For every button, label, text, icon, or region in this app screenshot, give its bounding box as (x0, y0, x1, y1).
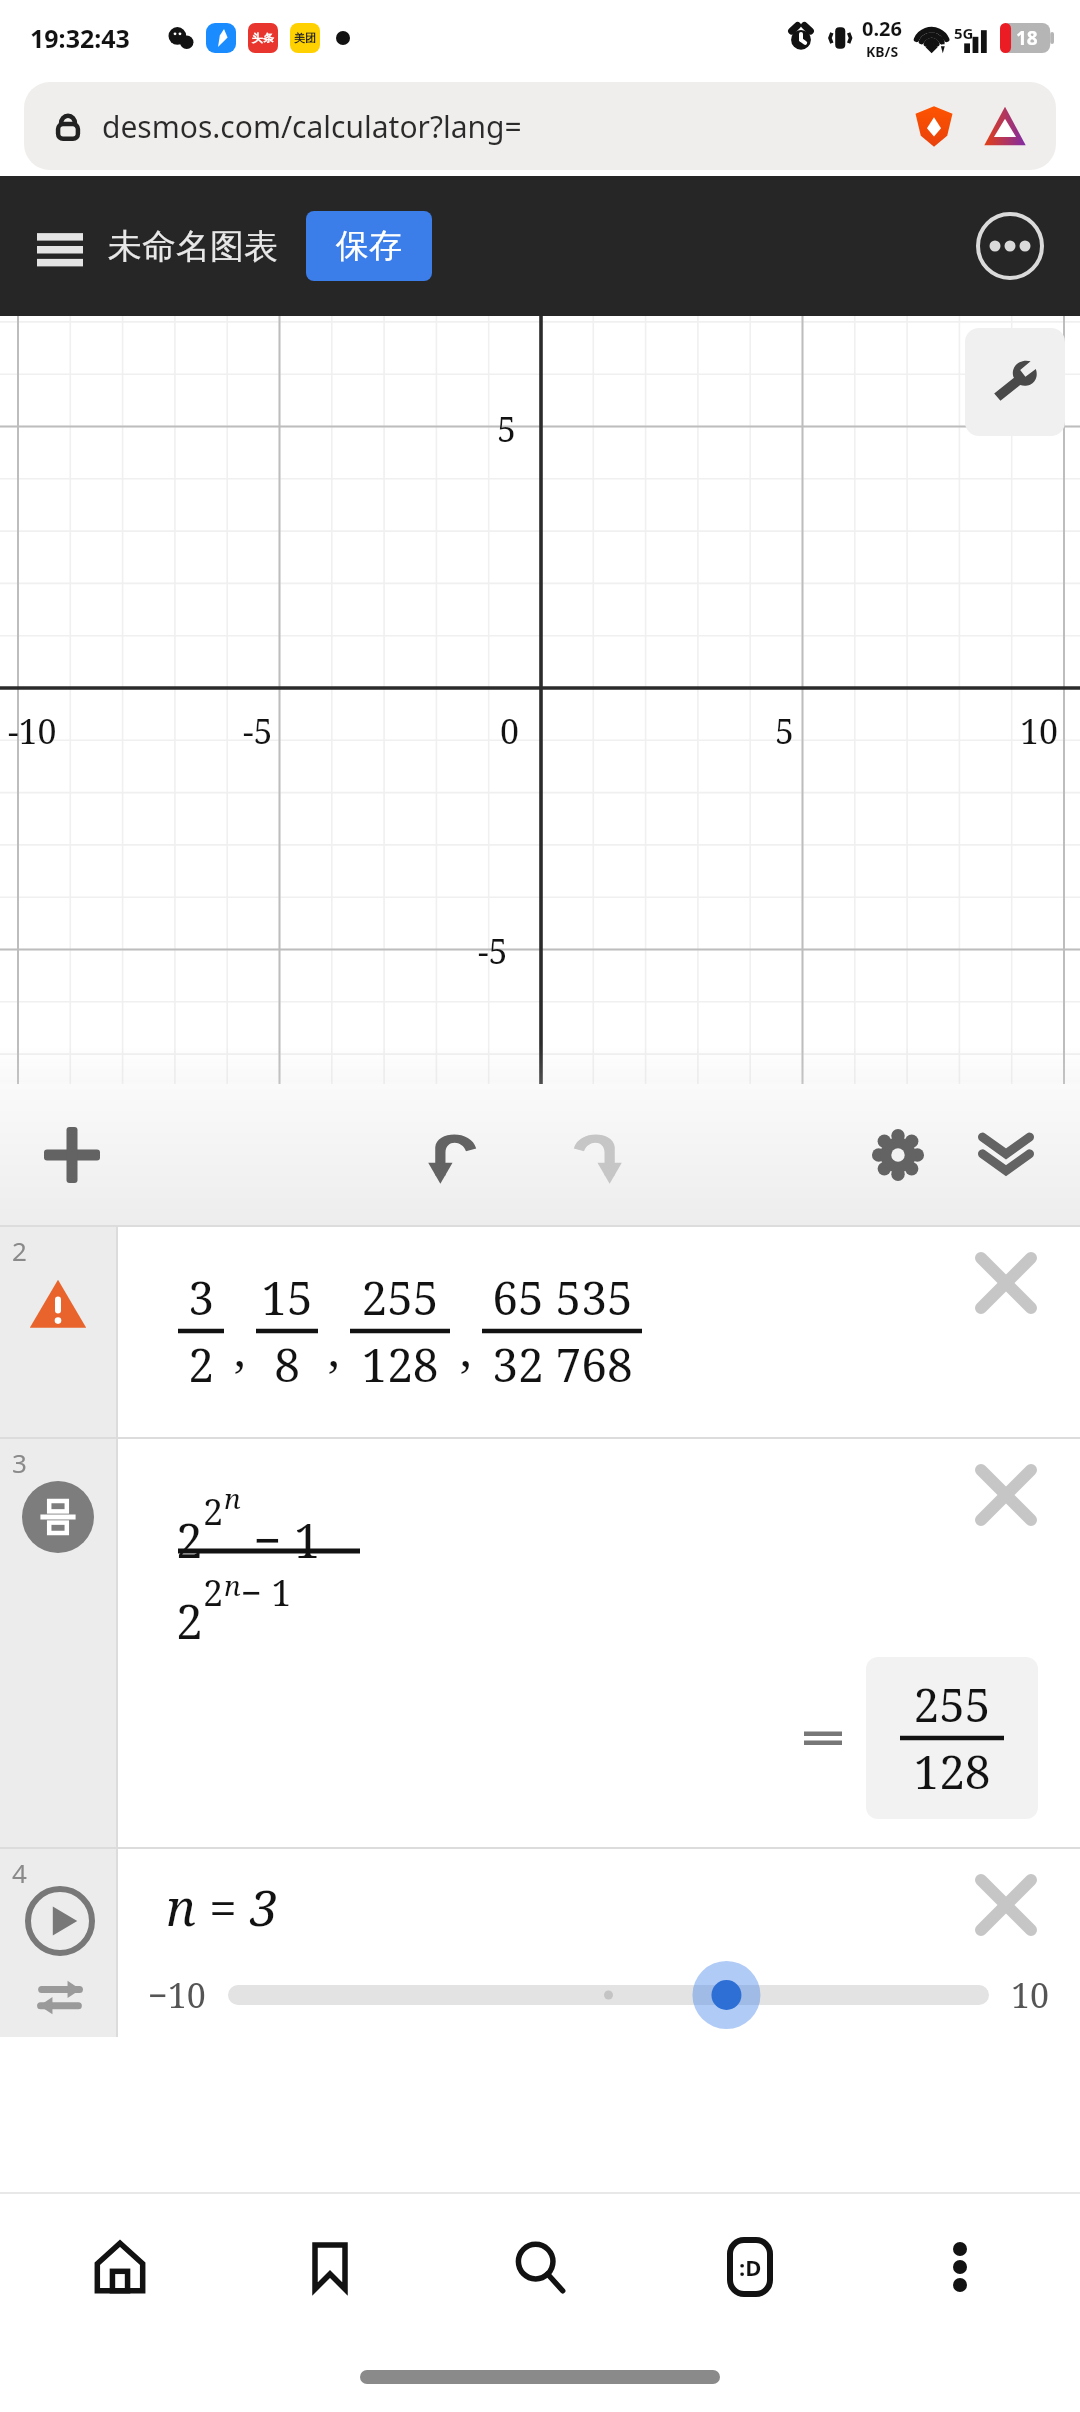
staticText: 18 (1016, 25, 1038, 51)
button[interactable]: Menu (22, 208, 98, 284)
staticText: , (234, 1318, 246, 1381)
staticText: 0 (500, 708, 520, 754)
staticText: − 1 (241, 1568, 292, 1617)
staticText: 32 768 (492, 1333, 633, 1396)
staticText: n (224, 1566, 241, 1604)
staticText: 2 (12, 1233, 27, 1268)
staticText: 2 (176, 1588, 203, 1653)
other: Brave Rewards (982, 103, 1028, 149)
staticText: 保存 (336, 225, 402, 267)
staticText: 255 (913, 1673, 991, 1736)
button[interactable]: Play animation (22, 1883, 98, 1959)
button[interactable]: 2 (0, 1225, 1080, 1437)
staticText: 4 (12, 1855, 27, 1890)
staticText: desmos.com/calculator?lang= (102, 106, 522, 147)
button[interactable]: Warning (26, 1273, 90, 1337)
staticText: 15 (261, 1266, 313, 1329)
staticText: 128 (361, 1333, 439, 1396)
button[interactable]: Delete expression (966, 1865, 1046, 1945)
staticText: n (224, 1479, 241, 1517)
button[interactable]: More options (968, 204, 1052, 288)
staticText: -5 (243, 708, 273, 754)
staticText: −10 (148, 1972, 206, 2018)
button[interactable]: Redo (543, 1105, 643, 1205)
button[interactable]: More (870, 2192, 1050, 2342)
staticText: 0.26 (862, 15, 902, 42)
button[interactable]: 4 (0, 1847, 1080, 2037)
staticText: 头条 (252, 31, 274, 45)
staticText: 10 (1011, 1972, 1050, 2018)
button[interactable]: Undo (407, 1105, 507, 1205)
staticText: 2 (203, 1568, 224, 1617)
staticText: 2 (203, 1487, 224, 1536)
button[interactable]: Graph settings (965, 328, 1065, 436)
staticText: 5 (497, 406, 517, 452)
staticText: 2 (176, 1507, 203, 1572)
button[interactable]: Search (450, 2192, 630, 2342)
button[interactable]: Collapse (956, 1105, 1056, 1205)
staticText: n = 3 (166, 1873, 278, 1941)
button[interactable]: 255 (866, 1657, 1038, 1819)
button[interactable]: Add expression (22, 1105, 122, 1205)
staticText: , (460, 1318, 472, 1381)
staticText: 19:32:43 (30, 21, 130, 55)
other: Brave shields (912, 104, 956, 148)
staticText: , (328, 1318, 340, 1381)
button[interactable]: desmos.com/calculator?lang= (24, 82, 1056, 170)
staticText: 美团 (294, 31, 316, 45)
button[interactable]: Fraction display (22, 1481, 94, 1553)
button[interactable]: Settings (848, 1105, 948, 1205)
staticText: 10 (1020, 708, 1059, 754)
staticText: 3 (12, 1445, 27, 1480)
button[interactable]: 保存 (306, 211, 432, 281)
staticText: KB/S (866, 42, 899, 61)
button[interactable]: 未命名图表 (108, 225, 278, 268)
button[interactable]: Loop direction (30, 1967, 90, 2027)
button[interactable]: Delete expression (966, 1243, 1046, 1323)
staticText: :D (739, 2252, 762, 2282)
staticText: − 1 (241, 1507, 321, 1572)
button[interactable]: 3 (0, 1437, 1080, 1847)
staticText: 3 (188, 1266, 214, 1329)
button[interactable]: Delete expression (966, 1455, 1046, 1535)
button[interactable]: Tabs (660, 2192, 840, 2342)
staticText: -10 (8, 708, 57, 754)
staticText: 2 (188, 1333, 214, 1396)
staticText: -5 (478, 928, 508, 974)
staticText: 8 (274, 1333, 300, 1396)
staticText: 65 535 (492, 1266, 633, 1329)
staticText: 128 (913, 1740, 991, 1803)
staticText: 255 (361, 1266, 439, 1329)
button[interactable] (228, 1967, 989, 2023)
staticText: 5G (954, 23, 974, 43)
button[interactable]: Home (30, 2192, 210, 2342)
button[interactable]: Bookmarks (240, 2192, 420, 2342)
staticText: 5 (775, 708, 795, 754)
